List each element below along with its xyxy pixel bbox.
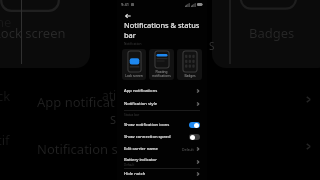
- staticText: ne: [0, 13, 12, 31]
- staticText: Notification style: [124, 101, 196, 107]
- staticText: Floating notifications: [152, 70, 171, 78]
- staticText: Notifications & status: [124, 20, 200, 30]
- staticText: Status bar: [124, 113, 140, 117]
- staticText: Show notification icons: [124, 122, 189, 128]
- button[interactable]: Show notification icons: [189, 122, 200, 128]
- button[interactable]: Show notification icons: [117, 119, 207, 131]
- button[interactable]: Battery indicator: [117, 155, 207, 168]
- staticText: Show connection speed: [124, 134, 189, 140]
- staticText: Hide notch: [124, 171, 196, 177]
- button[interactable]: Badges: [177, 49, 202, 80]
- staticText: ck: [0, 87, 11, 105]
- staticText: 9:41: [121, 2, 129, 7]
- staticText: Lock screen: [0, 24, 66, 42]
- staticText: App notificat: [37, 93, 115, 111]
- button[interactable]: Floating notifications: [149, 49, 174, 80]
- button[interactable]: Back: [123, 11, 132, 20]
- staticText: tif: [0, 131, 10, 149]
- staticText: ati: [102, 87, 117, 103]
- staticText: App notifications: [124, 88, 196, 94]
- staticText: Lock screen: [125, 74, 143, 78]
- button[interactable]: Show connection speed: [189, 134, 200, 140]
- button[interactable]: Hide notch: [117, 169, 207, 179]
- button[interactable]: Notification style: [117, 97, 207, 110]
- button[interactable]: Show connection speed: [117, 131, 207, 143]
- staticText: Badges: [249, 24, 295, 42]
- staticText: S: [209, 39, 215, 53]
- staticText: Badges: [184, 74, 196, 78]
- staticText: S: [110, 112, 117, 127]
- staticText: Battery indicator: [124, 157, 157, 163]
- button[interactable]: Lock screen: [122, 49, 146, 80]
- staticText: Notification: [124, 42, 142, 46]
- button[interactable]: Edit carrier name: [117, 143, 207, 155]
- staticText: Notification s: [37, 140, 118, 158]
- staticText: Default: [182, 147, 194, 152]
- staticText: Default: [124, 163, 135, 167]
- staticText: Edit carrier name: [124, 146, 182, 152]
- staticText: bar: [124, 30, 136, 40]
- button[interactable]: App notifications: [117, 84, 207, 97]
